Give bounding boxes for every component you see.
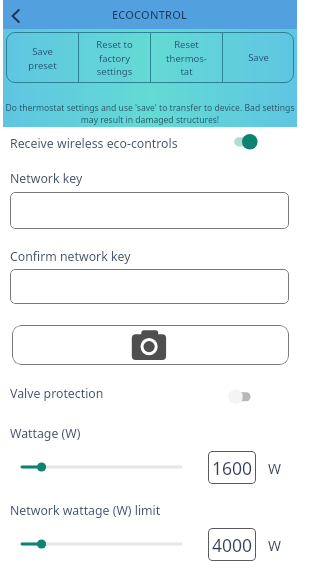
- button[interactable]: Take photo: [12, 325, 289, 365]
- button[interactable]: Slider: [14, 456, 189, 478]
- staticText: Do thermostat settings and use 'save' to…: [3, 102, 297, 126]
- staticText: Wattage (W): [10, 425, 81, 442]
- staticText: Reset thermos- tat: [166, 38, 207, 77]
- button[interactable]: Slider: [14, 533, 189, 555]
- staticText: 4000: [212, 533, 253, 557]
- staticText: Network wattage (W) limit: [10, 502, 161, 519]
- button[interactable]: 4000: [208, 528, 256, 561]
- button[interactable]: Valve protection toggle: [225, 386, 257, 408]
- staticText: 1600: [212, 456, 253, 480]
- button[interactable]: Receive wireless eco-controls toggle: [230, 130, 262, 154]
- staticText: W: [268, 459, 282, 478]
- button[interactable]: Reset to factory settings: [79, 32, 150, 83]
- staticText: Save preset: [28, 45, 57, 71]
- staticText: Confirm network key: [10, 248, 131, 265]
- button[interactable]: 1600: [208, 451, 256, 484]
- staticText: W: [268, 536, 282, 555]
- button[interactable]: Text field: [10, 192, 289, 229]
- button[interactable]: Save: [223, 32, 294, 83]
- button[interactable]: Reset thermos- tat: [151, 32, 222, 83]
- staticText: Network key: [10, 170, 83, 187]
- staticText: Receive wireless eco-controls: [10, 135, 178, 152]
- staticText: ECOCONTROL: [112, 7, 188, 22]
- staticText: Valve protection: [10, 385, 104, 402]
- button[interactable]: Back: [3, 0, 29, 29]
- staticText: Save: [248, 51, 269, 64]
- staticText: Reset to factory settings: [96, 38, 133, 77]
- button[interactable]: Text field: [10, 269, 289, 304]
- button[interactable]: Save preset: [6, 32, 78, 83]
